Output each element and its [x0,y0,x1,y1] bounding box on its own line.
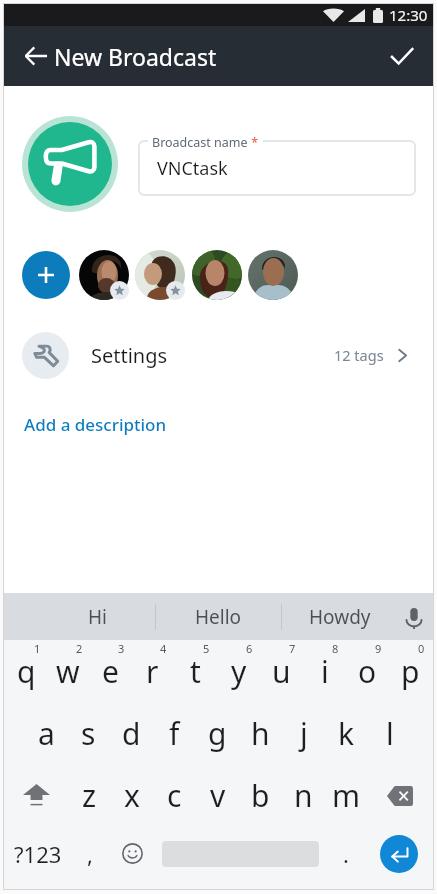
staticText: . [343,839,349,869]
button[interactable]: VNCtask [138,140,416,196]
button[interactable]: v [196,764,239,827]
staticText: Settings [91,342,168,369]
button[interactable]: c [153,764,196,827]
button[interactable]: q [5,640,47,702]
staticText: , [87,839,93,869]
staticText: ?123 [14,839,62,869]
button[interactable]: h [239,702,282,764]
button[interactable]: Hi [40,593,155,640]
button[interactable]: Done [380,34,424,78]
button[interactable]: b [239,764,282,827]
staticText: VNCtask [157,156,228,181]
button[interactable]: Space [155,822,326,885]
button[interactable]: k [325,702,368,764]
button[interactable]: ?123 [5,822,70,885]
staticText: w [56,651,80,692]
button[interactable]: Broadcast avatar [22,116,118,212]
button[interactable]: Shift [5,764,68,827]
button[interactable]: s [67,702,110,764]
button[interactable]: Back [14,34,58,78]
staticText: 12 tags [334,345,384,365]
button[interactable]: g [196,702,239,764]
staticText: y [231,651,247,692]
staticText: 5 [203,641,210,656]
button[interactable]: . [326,822,366,885]
staticText: Add a description [24,413,167,436]
button[interactable]: , [70,822,110,885]
staticText: e [102,651,119,692]
staticText: 6 [246,641,253,656]
button[interactable]: i [303,640,346,702]
staticText: 2 [76,641,83,656]
staticText: m [332,775,361,816]
button[interactable]: Contact [248,250,298,300]
button[interactable]: z [68,764,110,827]
staticText: * [248,134,259,151]
button[interactable]: Enter [380,835,418,873]
staticText: i [321,651,329,692]
staticText: Hello [195,604,242,630]
staticText: d [122,713,141,754]
button[interactable]: x [110,764,153,827]
button[interactable]: p [389,640,432,702]
button[interactable]: e [89,640,131,702]
button[interactable]: Backspace [368,764,432,827]
button[interactable]: Hello [156,593,281,640]
staticText: r [146,651,159,692]
button[interactable]: Emoji [110,822,155,885]
staticText: Howdy [309,604,371,630]
staticText: o [358,651,377,692]
button[interactable]: Add a description [24,413,167,436]
button[interactable]: n [282,764,325,827]
staticText: u [272,651,291,692]
staticText: 7 [289,641,296,656]
staticText: k [338,713,355,754]
staticText: 9 [375,641,382,656]
staticText: Hi [88,604,107,630]
button[interactable]: d [110,702,153,764]
button[interactable]: Howdy [282,593,397,640]
button[interactable]: o [346,640,389,702]
staticText: 1 [34,641,41,656]
button[interactable]: a [25,702,67,764]
staticText: z [82,775,97,816]
staticText: a [38,713,55,754]
staticText: p [401,651,420,692]
button[interactable]: j [282,702,325,764]
staticText: j [300,713,308,754]
button[interactable]: m [325,764,368,827]
button[interactable]: l [368,702,411,764]
button[interactable]: Contact [79,250,129,300]
staticText: 4 [160,641,167,656]
staticText: g [208,713,227,754]
button[interactable]: r [131,640,174,702]
button[interactable]: t [174,640,217,702]
staticText: 8 [332,641,339,656]
button[interactable]: y [217,640,260,702]
staticText: c [167,775,182,816]
staticText: Broadcast name [152,134,248,151]
button[interactable]: Voice input [394,593,434,640]
staticText: f [169,713,180,754]
button[interactable]: Contact [192,250,242,300]
staticText: 3 [118,641,125,656]
staticText: b [251,775,270,816]
staticText: 12:30 [389,5,428,25]
staticText: New Broadcast [54,41,217,72]
button[interactable]: Settings [3,322,434,388]
button[interactable]: Contact [135,250,185,300]
staticText: l [386,713,394,754]
staticText: t [190,651,201,692]
staticText: v [210,775,226,816]
button[interactable]: u [260,640,303,702]
staticText: x [124,775,140,816]
button[interactable]: f [153,702,196,764]
button[interactable]: w [47,640,89,702]
staticText: h [251,713,270,754]
button[interactable]: Add recipient [22,251,70,299]
staticText: n [294,775,313,816]
staticText: s [81,713,96,754]
staticText: 0 [418,641,425,656]
staticText: q [17,651,36,692]
